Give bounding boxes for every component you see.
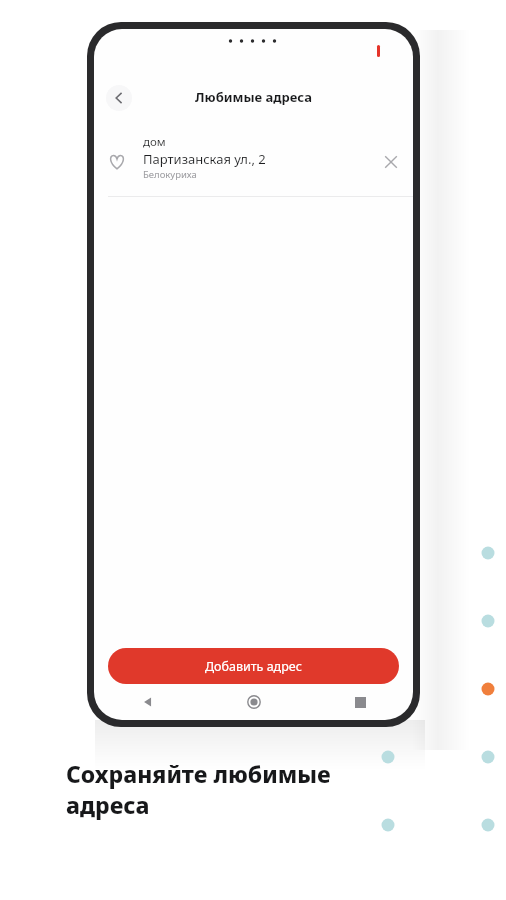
button[interactable]: Назад [106,85,132,111]
button[interactable]: Назад [94,684,201,720]
button[interactable]: Домой [201,684,307,720]
button[interactable]: Удалить [382,153,400,171]
staticText: Белокуриха [143,168,197,181]
staticText: Партизанская ул., 2 [143,150,266,168]
staticText: Любимые адреса [94,88,413,106]
button[interactable]: Недавние [307,684,413,720]
button[interactable]: дом [94,127,413,197]
staticText: Сохраняйте любимые [66,758,331,789]
staticText: дом [143,134,166,150]
staticText: адреса [66,789,150,820]
button[interactable]: Добавить адрес [108,648,399,684]
staticText: Добавить адрес [205,658,302,675]
